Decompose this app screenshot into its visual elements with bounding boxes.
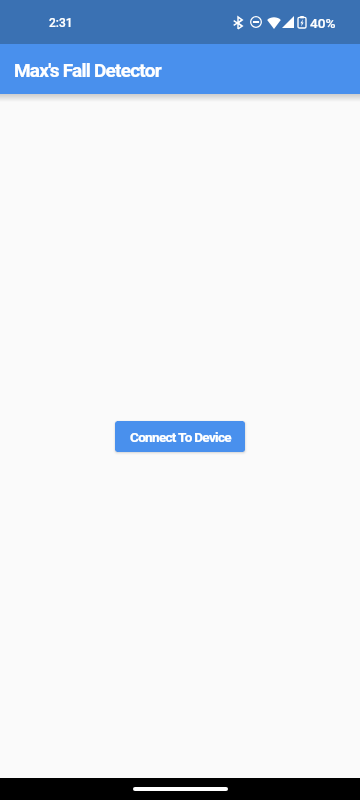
other: Home (133, 787, 228, 791)
other: Mobile signal (282, 16, 294, 28)
other: Battery charging (298, 16, 306, 28)
staticText: Max's Fall Detector (14, 59, 161, 81)
staticText: 2:31 (49, 16, 73, 30)
button[interactable]: Connect To Device (115, 421, 245, 452)
other: Do not disturb (250, 16, 262, 28)
other: Bluetooth on (233, 17, 243, 29)
staticText: Connect To Device (130, 429, 231, 445)
staticText: 40% (310, 15, 336, 31)
other: Wi-Fi full signal (267, 16, 281, 29)
